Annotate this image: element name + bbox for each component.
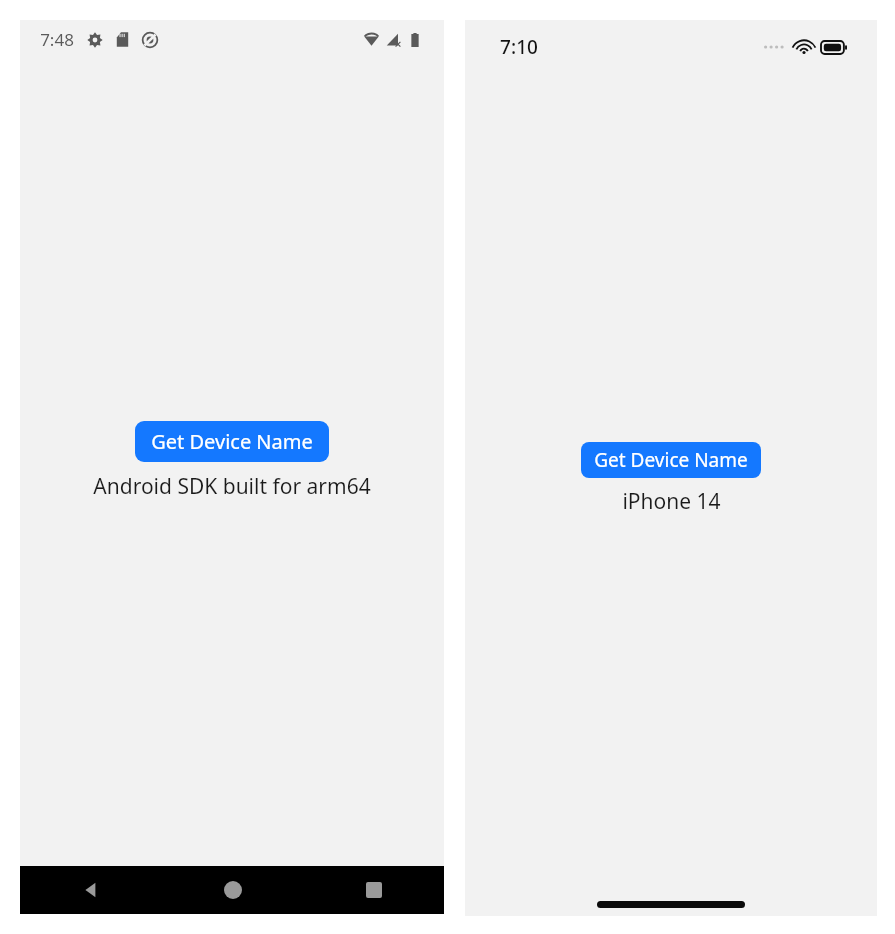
button[interactable]: Get Device Name [581, 442, 761, 478]
staticText: iPhone 14 [622, 487, 721, 516]
button[interactable]: Recent apps [303, 866, 444, 914]
staticText: Get Device Name [151, 428, 313, 455]
button[interactable]: Get Device Name [135, 421, 329, 462]
staticText: Android SDK built for arm64 [93, 472, 371, 501]
button[interactable]: Back [20, 866, 162, 914]
staticText: 7:48 [40, 28, 74, 51]
button[interactable]: Home [162, 866, 303, 914]
staticText: Get Device Name [594, 447, 748, 473]
staticText: 7:10 [500, 34, 538, 60]
